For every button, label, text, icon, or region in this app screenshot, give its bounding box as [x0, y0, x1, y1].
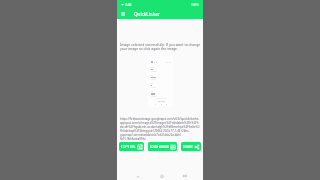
button[interactable]: Menu	[119, 10, 127, 18]
staticText: 100%	[191, 3, 199, 7]
staticText: LOAD IMAGE	[150, 145, 169, 149]
staticText: 4:48	[125, 3, 132, 7]
staticText: Image selected successfully. If you want…	[120, 42, 201, 51]
staticText: QuickLinker	[134, 11, 160, 17]
button[interactable]: Back	[134, 172, 142, 180]
button[interactable]: COPY URL	[119, 142, 144, 151]
staticText: COPY URL	[121, 145, 136, 149]
staticText: https://firebasestorage.googleapis.com/v…	[120, 117, 200, 141]
button[interactable]: LOAD IMAGE	[148, 142, 177, 151]
button[interactable]: Recents	[181, 172, 189, 180]
button[interactable]: SHARE	[181, 142, 201, 151]
staticText: SHARE	[183, 145, 193, 149]
button[interactable]: Home	[158, 172, 166, 180]
